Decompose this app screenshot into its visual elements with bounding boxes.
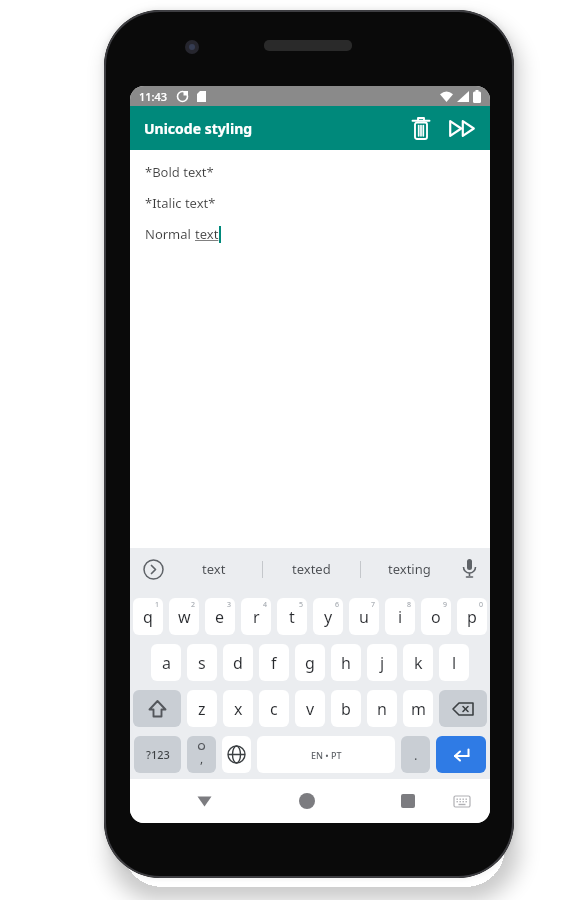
staticText: i [398,606,403,628]
staticText: c [270,698,278,720]
button[interactable] [133,690,181,727]
staticText: z [198,698,206,720]
button[interactable]: , [187,736,216,773]
button[interactable] [222,736,251,773]
button[interactable]: c [259,690,289,727]
button[interactable]: d [223,644,253,681]
button[interactable]: o [421,598,451,635]
staticText: ?123 [146,747,170,762]
staticText: , [200,750,204,766]
staticText: x [234,698,243,720]
staticText: texting [388,560,431,578]
button[interactable] [439,690,487,727]
staticText: 6 [335,600,340,610]
staticText: d [233,652,243,674]
staticText: 7 [371,600,376,610]
staticText: 4 [263,600,268,610]
staticText: s [198,652,206,674]
staticText: u [359,606,369,628]
button[interactable]: u [349,598,379,635]
button[interactable] [406,113,436,143]
button[interactable]: a [151,644,181,681]
button[interactable]: v [295,690,325,727]
button[interactable]: text [166,548,262,590]
staticText: b [341,698,351,720]
button[interactable]: EN • PT [257,736,395,773]
staticText: y [324,606,333,628]
button[interactable]: j [367,644,397,681]
staticText: *Italic text* [145,194,216,212]
staticText: Normal [145,225,195,243]
button[interactable] [446,112,478,144]
staticText: 2 [191,600,196,610]
button[interactable]: w [169,598,199,635]
button[interactable]: e [205,598,235,635]
staticText: v [306,698,315,720]
button[interactable]: ?123 [134,736,181,773]
button[interactable]: z [187,690,217,727]
button[interactable]: i [385,598,415,635]
staticText: texted [292,560,331,578]
button[interactable] [197,796,212,807]
staticText: 0 [479,600,484,610]
staticText: l [452,652,457,674]
button[interactable]: texting [361,548,458,590]
button[interactable] [454,796,470,808]
button[interactable]: b [331,690,361,727]
staticText: 11:43 [139,89,168,104]
staticText: EN • PT [311,749,342,761]
staticText: . [414,746,418,764]
staticText: 3 [227,600,232,610]
staticText: g [305,652,315,674]
button[interactable]: k [403,644,433,681]
button[interactable]: q [133,598,163,635]
button[interactable]: p [457,598,487,635]
button[interactable]: x [223,690,253,727]
button[interactable]: r [241,598,271,635]
staticText: k [414,652,423,674]
staticText: r [253,606,260,628]
staticText: t [289,606,295,628]
staticText: p [467,606,477,628]
button[interactable] [458,558,480,580]
staticText: 1 [155,600,160,610]
staticText: j [380,652,385,674]
staticText: 5 [299,600,304,610]
staticText: w [178,606,191,628]
button[interactable] [299,793,315,809]
staticText: *Bold text* [145,163,214,181]
button[interactable]: n [367,690,397,727]
staticText: Unicode styling [144,119,253,138]
staticText: o [431,606,441,628]
staticText: 9 [443,600,448,610]
staticText: text [202,560,226,578]
staticText: q [143,606,153,628]
button[interactable]: m [403,690,433,727]
button[interactable]: . [401,736,430,773]
staticText: f [271,652,277,674]
button[interactable]: texted [263,548,360,590]
button[interactable]: f [259,644,289,681]
button[interactable] [140,556,166,582]
staticText: n [377,698,387,720]
staticText: text [195,225,219,243]
button[interactable]: g [295,644,325,681]
button[interactable]: s [187,644,217,681]
staticText: m [411,698,426,720]
button[interactable]: y [313,598,343,635]
button[interactable] [401,794,415,808]
staticText: 8 [407,600,412,610]
staticText: h [341,652,351,674]
button[interactable] [436,736,486,773]
button[interactable]: h [331,644,361,681]
staticText: a [162,652,171,674]
button[interactable]: l [439,644,469,681]
staticText: e [215,606,225,628]
button[interactable]: t [277,598,307,635]
